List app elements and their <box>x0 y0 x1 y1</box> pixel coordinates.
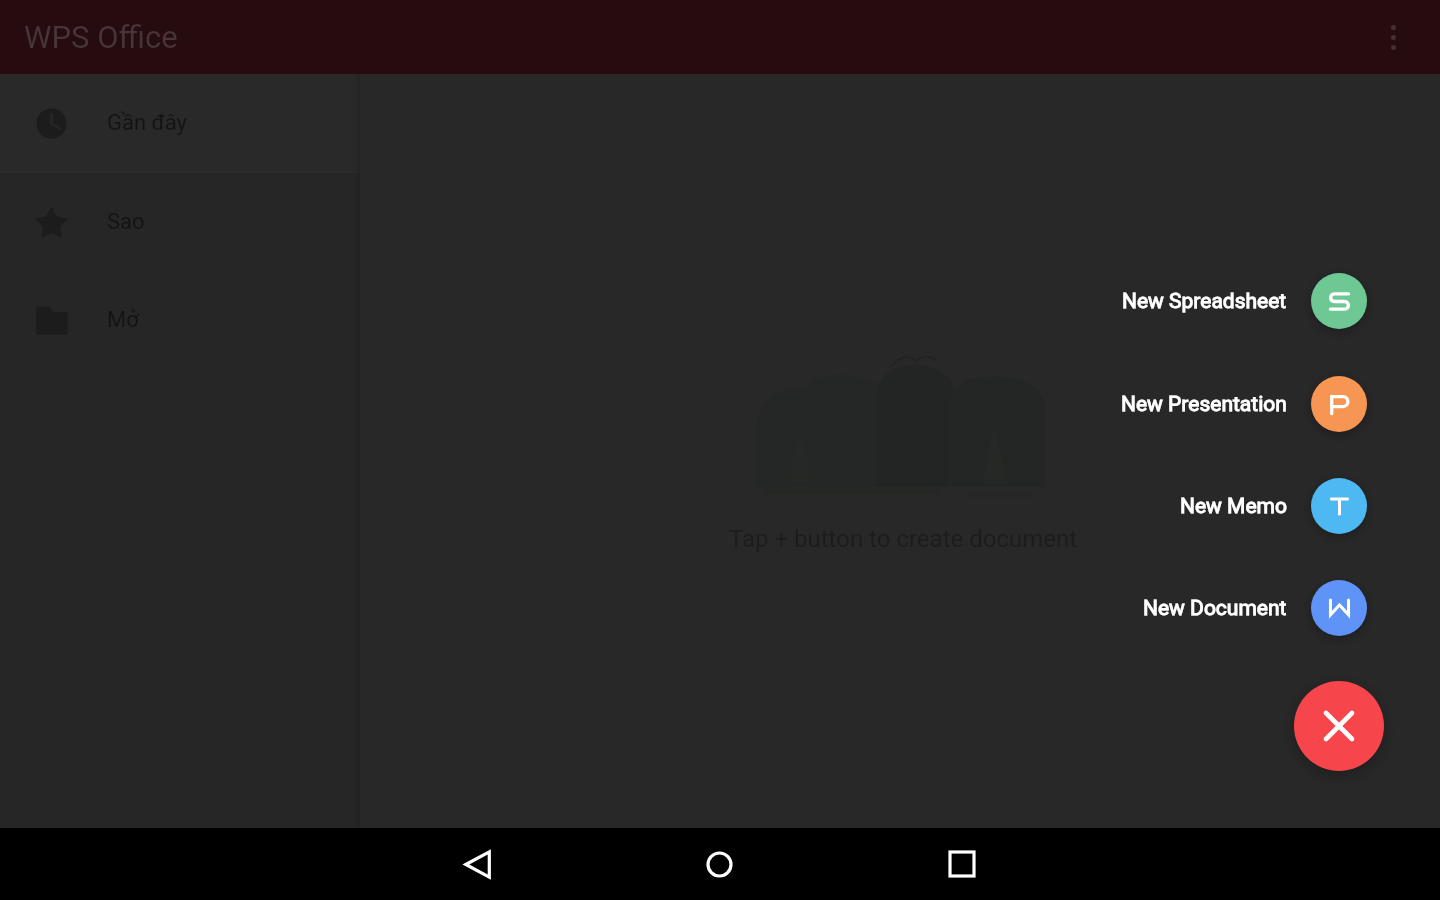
staticText: New Memo <box>1180 494 1287 519</box>
button[interactable]: Back <box>446 832 510 896</box>
staticText: Mở <box>107 307 139 333</box>
staticText: Tap + button to create document <box>729 525 1078 553</box>
button[interactable]: Home <box>687 832 751 896</box>
button[interactable]: New Presentation <box>1105 376 1367 432</box>
staticText: New Spreadsheet <box>1122 289 1287 314</box>
staticText: WPS Office <box>24 19 178 55</box>
button[interactable]: Close create menu <box>1294 681 1384 771</box>
staticText: New Presentation <box>1121 392 1287 417</box>
button[interactable]: Recent apps <box>930 832 994 896</box>
button[interactable]: New Spreadsheet <box>1105 273 1367 329</box>
staticText: New Document <box>1143 596 1287 621</box>
staticText: Gần đây <box>107 110 187 136</box>
button[interactable]: New Document <box>1105 580 1367 636</box>
staticText: Sao <box>107 209 145 235</box>
button[interactable]: More options <box>1369 13 1417 61</box>
button[interactable]: New Memo <box>1105 478 1367 534</box>
